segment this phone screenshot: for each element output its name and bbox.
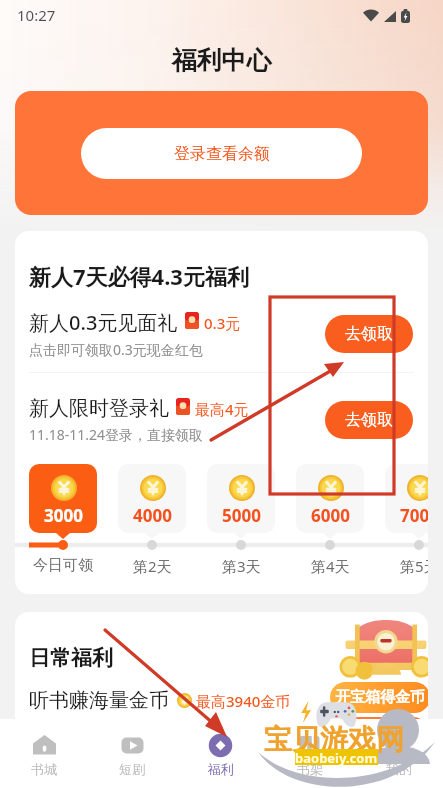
staticText: 我的 bbox=[386, 761, 412, 777]
button[interactable]: 去领取 bbox=[325, 401, 413, 439]
staticText: baobeiy.com bbox=[295, 749, 378, 765]
staticText: 第2天 bbox=[133, 556, 172, 576]
staticText: 福利 bbox=[208, 761, 234, 777]
staticText: 4000 bbox=[133, 504, 172, 527]
staticText: 去听书 bbox=[357, 723, 405, 743]
button[interactable]: 书城 bbox=[0, 731, 88, 777]
staticText: 听书赚海量金币 bbox=[29, 688, 169, 713]
staticText: 开宝箱得金币 bbox=[335, 688, 425, 707]
staticText: 第3天 bbox=[222, 556, 261, 576]
button[interactable]: 登录查看余额 bbox=[81, 128, 362, 179]
staticText: 11.18-11.24登录，直接领取 bbox=[29, 425, 204, 444]
staticText: 福利中心 bbox=[0, 45, 443, 76]
staticText: 新人0.3元见面礼 bbox=[29, 309, 178, 336]
staticText: 最高4元 bbox=[195, 399, 249, 419]
button[interactable]: 书架 bbox=[265, 731, 354, 777]
staticText: 0.3元 bbox=[204, 313, 241, 333]
button[interactable]: 去领取 bbox=[325, 315, 413, 353]
staticText: 登录查看余额 bbox=[174, 144, 270, 164]
staticText: 点击即可领取0.3元现金红包 bbox=[29, 340, 203, 359]
staticText: 日常福利 bbox=[29, 645, 113, 671]
staticText: 新人7天必得4.3元福利 bbox=[29, 261, 249, 291]
button[interactable]: 7000 bbox=[385, 464, 428, 533]
staticText: 10:27 bbox=[17, 5, 56, 25]
button[interactable]: 短剧 bbox=[88, 731, 176, 777]
staticText: 去领取 bbox=[345, 410, 393, 430]
button[interactable]: 开宝箱得金币 bbox=[330, 682, 428, 713]
button[interactable]: 3000 bbox=[29, 464, 97, 533]
staticText: 6000 bbox=[311, 504, 350, 527]
button[interactable]: 登录查看余额 bbox=[15, 91, 428, 215]
staticText: 书架 bbox=[297, 761, 323, 777]
staticText: 7000 bbox=[400, 504, 428, 527]
button[interactable]: 5000 bbox=[207, 464, 275, 533]
button[interactable]: 福利 bbox=[176, 731, 265, 777]
staticText: 短剧 bbox=[119, 761, 145, 777]
button[interactable]: 去听书 bbox=[333, 717, 428, 749]
button[interactable]: 6000 bbox=[296, 464, 364, 533]
staticText: 最高3940金币 bbox=[196, 691, 291, 711]
button[interactable]: 4000 bbox=[118, 464, 186, 533]
staticText: 去领取 bbox=[345, 324, 393, 344]
button[interactable]: 我的 bbox=[354, 731, 443, 777]
staticText: 第5天 bbox=[400, 556, 428, 576]
button[interactable]: 新人0.3元见面礼 bbox=[29, 308, 413, 360]
staticText: 宝贝游戏网 bbox=[264, 722, 404, 757]
staticText: 5000 bbox=[222, 504, 261, 527]
staticText: 今日可领 bbox=[33, 556, 93, 575]
button[interactable]: 听书赚海量金币 bbox=[29, 688, 291, 713]
staticText: 3000 bbox=[44, 504, 83, 527]
staticText: 书城 bbox=[31, 761, 57, 777]
staticText: 新人限时登录礼 bbox=[29, 396, 169, 421]
staticText: 第4天 bbox=[311, 556, 350, 576]
button[interactable]: 新人限时登录礼 bbox=[29, 394, 413, 446]
